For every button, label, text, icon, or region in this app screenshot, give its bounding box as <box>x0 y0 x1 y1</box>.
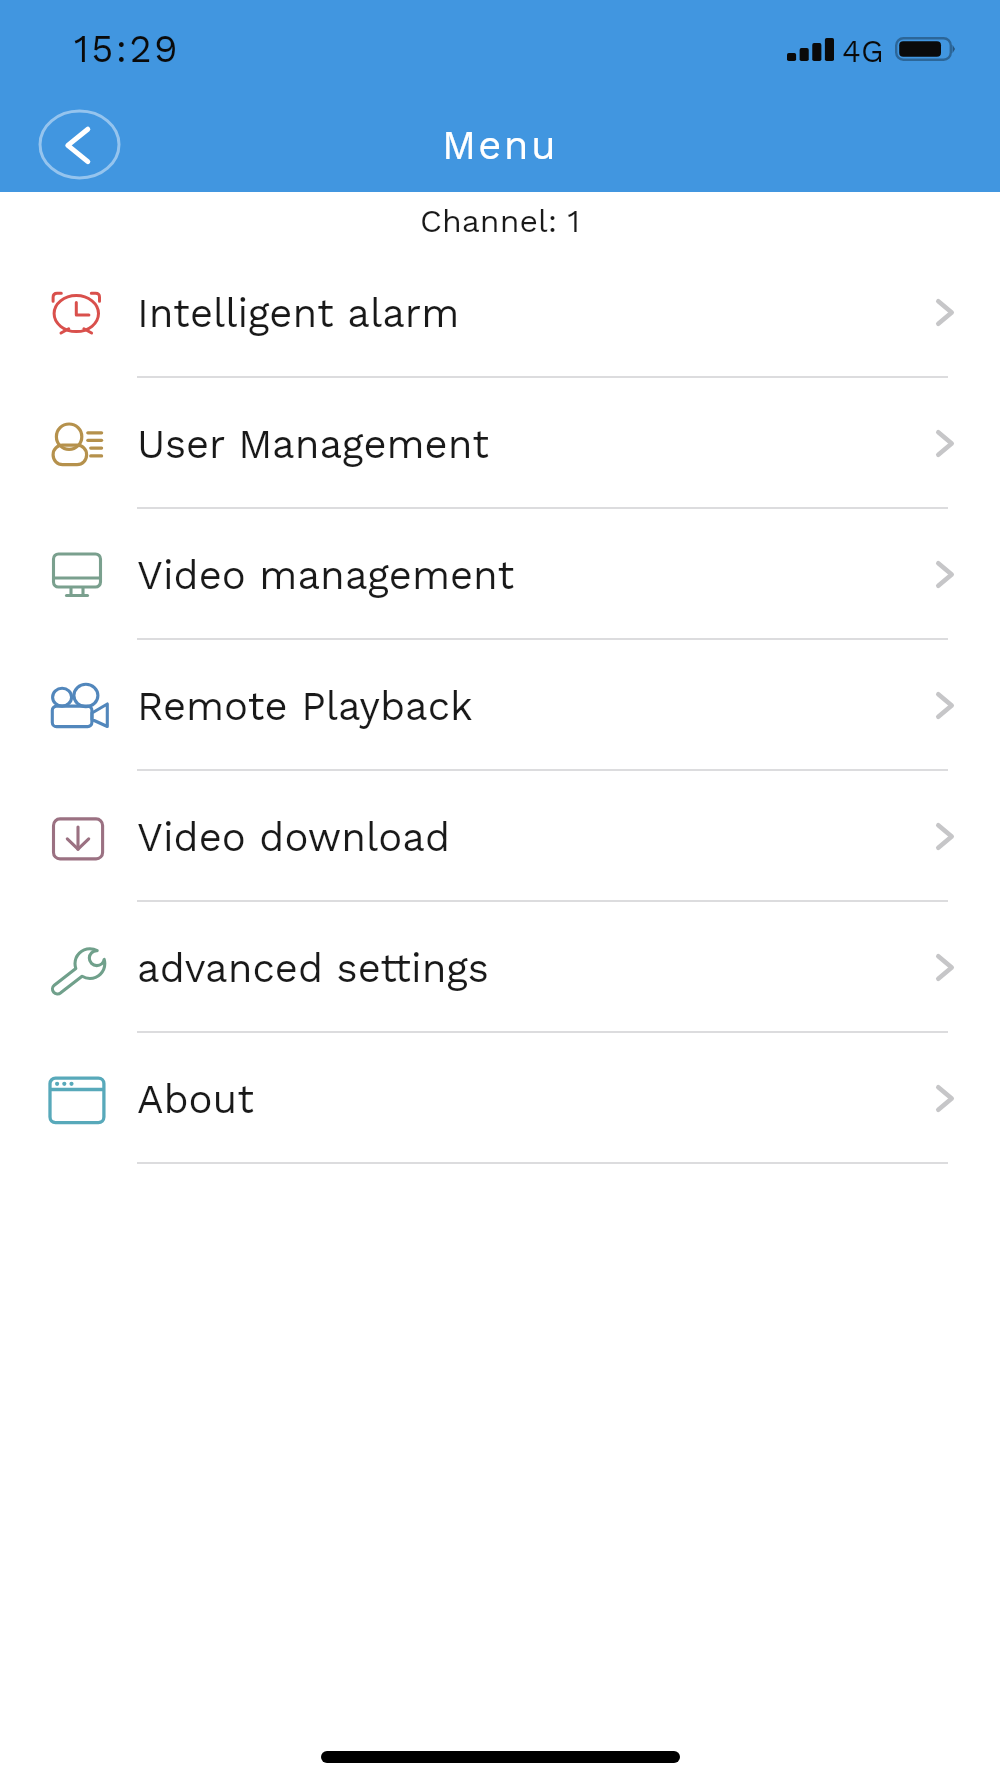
button[interactable]: advanced settings <box>0 902 1000 1033</box>
staticText: Remote Playback <box>137 683 473 730</box>
button[interactable]: Video management <box>0 509 1000 640</box>
button[interactable]: Video download <box>0 771 1000 902</box>
staticText: Channel: 1 <box>420 202 580 240</box>
button[interactable]: User Management <box>0 378 1000 509</box>
staticText: About <box>137 1076 254 1123</box>
staticText: 4G <box>842 33 884 69</box>
staticText: Video management <box>137 552 515 599</box>
staticText: Video download <box>137 814 450 861</box>
button[interactable]: Back <box>38 104 122 184</box>
button[interactable]: About <box>0 1033 1000 1164</box>
button[interactable]: Remote Playback <box>0 640 1000 771</box>
button[interactable]: Intelligent alarm <box>0 247 1000 378</box>
staticText: advanced settings <box>137 945 489 992</box>
staticText: Menu <box>442 122 558 169</box>
staticText: Intelligent alarm <box>137 290 460 337</box>
staticText: 15:29 <box>74 27 180 72</box>
staticText: User Management <box>137 421 489 468</box>
